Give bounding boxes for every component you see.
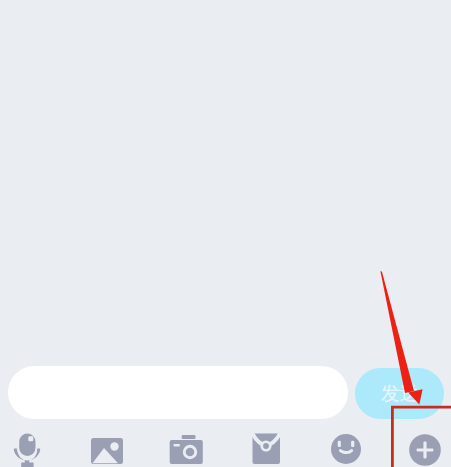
button[interactable]: Red packet [244,427,288,467]
button[interactable]: Camera [164,430,208,467]
button[interactable]: 发送 [355,368,444,419]
staticText: 发送 [381,382,419,406]
button[interactable]: More [403,428,447,467]
button[interactable]: Voice message [5,427,49,467]
button[interactable] [8,366,348,419]
button[interactable]: Emoji [324,427,368,467]
button[interactable]: Photo [85,429,129,467]
